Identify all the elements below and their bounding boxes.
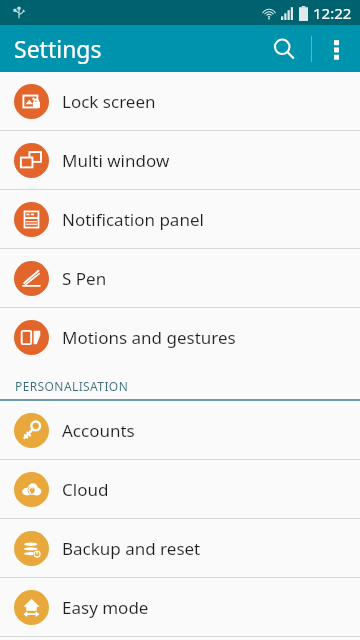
staticText: PERSONALISATION	[15, 378, 129, 394]
staticText: Easy mode	[62, 596, 149, 619]
button[interactable]: Motions and gestures	[0, 308, 360, 366]
button[interactable]: Easy mode	[0, 578, 360, 636]
staticText: Notification panel	[62, 208, 204, 231]
staticText: Accounts	[62, 419, 135, 442]
button[interactable]: More options	[312, 25, 360, 72]
button[interactable]: Notification panel	[0, 190, 360, 248]
staticText: Cloud	[62, 478, 109, 501]
staticText: S Pen	[62, 267, 107, 290]
staticText: Backup and reset	[62, 537, 201, 560]
staticText: Motions and gestures	[62, 326, 236, 349]
staticText: Lock screen	[62, 90, 156, 113]
staticText: Multi window	[62, 149, 170, 172]
button[interactable]: S Pen	[0, 249, 360, 307]
button[interactable]: Multi window	[0, 131, 360, 189]
staticText: Settings	[14, 33, 102, 64]
button[interactable]: Lock screen	[0, 72, 360, 130]
button[interactable]: Search	[257, 25, 311, 72]
button[interactable]: Cloud	[0, 460, 360, 518]
button[interactable]: Accounts	[0, 401, 360, 459]
staticText: 12:22	[313, 3, 352, 23]
button[interactable]: Backup and reset	[0, 519, 360, 577]
